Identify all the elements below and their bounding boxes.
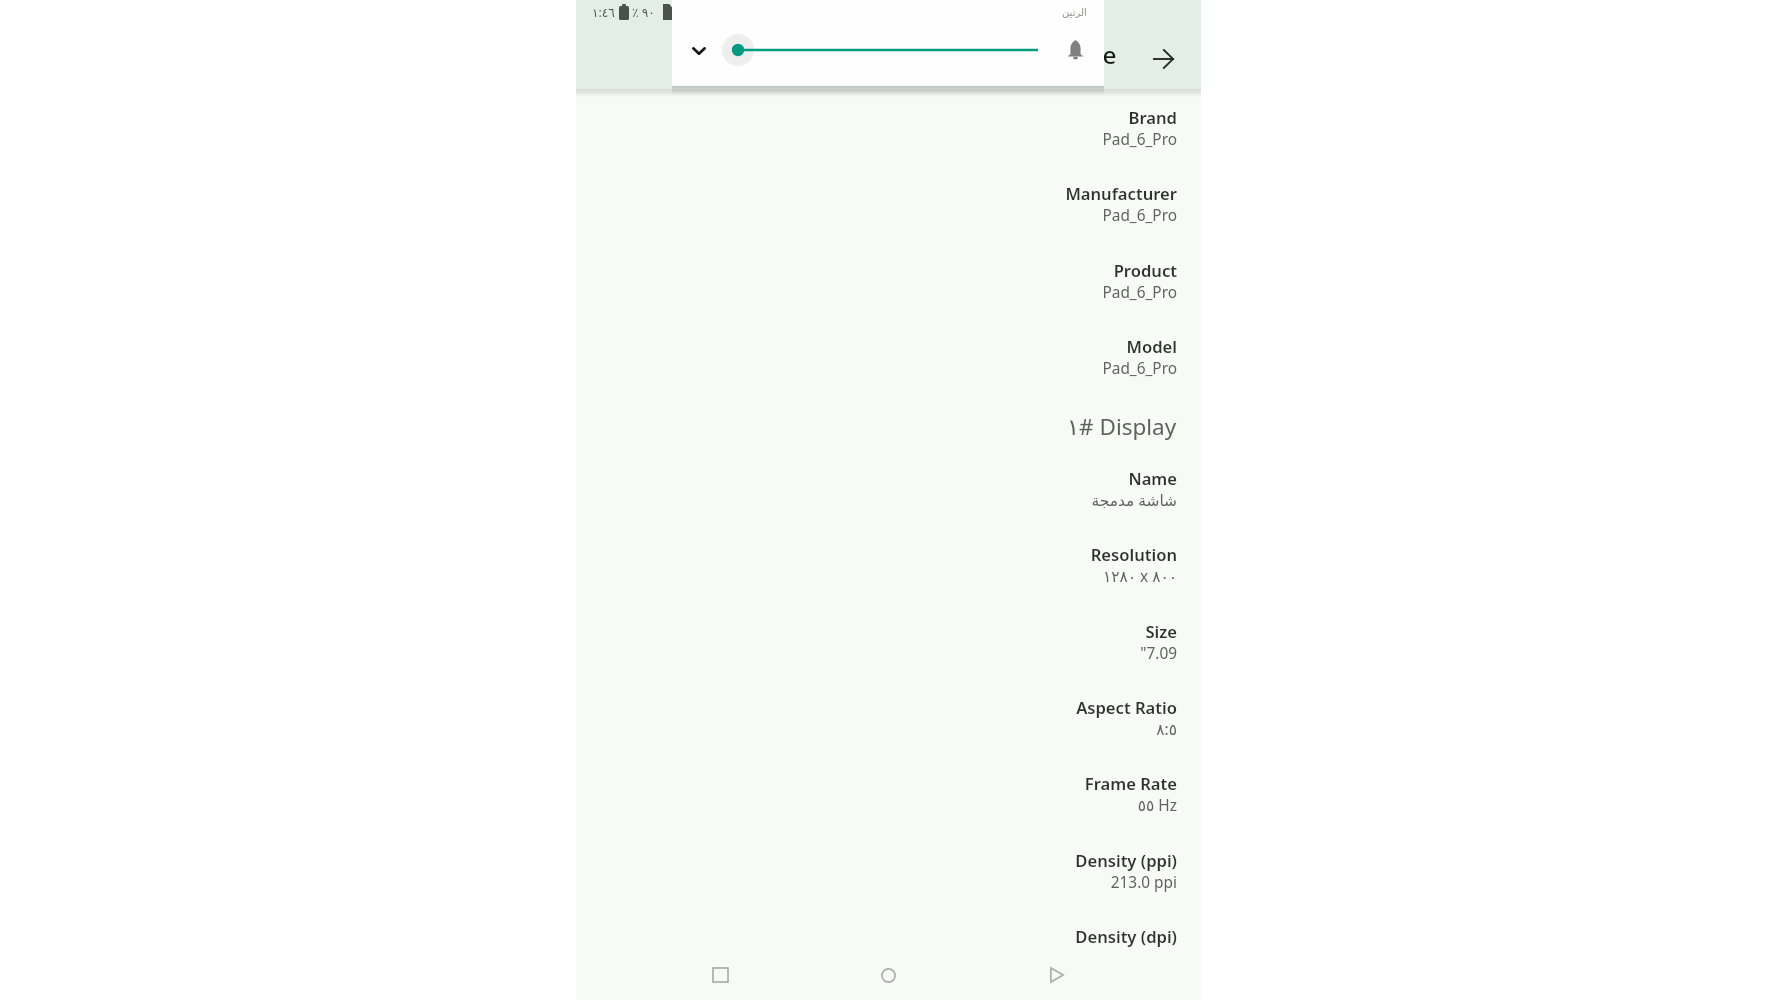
staticText: Pad_6_Pro bbox=[1102, 282, 1177, 303]
staticText: Pad_6_Pro bbox=[1102, 358, 1177, 379]
staticText: Size bbox=[1145, 620, 1177, 643]
staticText: ١# Display bbox=[1067, 411, 1177, 442]
button[interactable]: Size bbox=[576, 620, 1201, 692]
staticText: الرنين bbox=[1062, 7, 1087, 19]
staticText: Aspect Ratio bbox=[1076, 696, 1177, 719]
staticText: "7.09 bbox=[1140, 643, 1177, 664]
staticText: Resolution bbox=[1090, 543, 1177, 566]
button[interactable]: Model bbox=[576, 335, 1201, 407]
button[interactable]: Resolution bbox=[576, 543, 1201, 615]
button[interactable]: Density (ppi) bbox=[576, 849, 1201, 921]
staticText: Name bbox=[1128, 467, 1177, 490]
staticText: شاشة مدمجة bbox=[1091, 490, 1177, 511]
staticText: Model bbox=[1126, 335, 1177, 358]
staticText: Density (ppi) bbox=[1075, 849, 1177, 872]
button[interactable]: Density (dpi) bbox=[576, 925, 1201, 997]
staticText: Product bbox=[1113, 259, 1177, 282]
button[interactable]: Product bbox=[576, 259, 1201, 331]
staticText: Frame Rate bbox=[1084, 772, 1177, 795]
button[interactable]: Back bbox=[1033, 951, 1081, 999]
button[interactable]: Recents bbox=[696, 951, 744, 999]
button[interactable]: Ringtone bbox=[1061, 36, 1089, 64]
staticText: 213.0 ppi bbox=[1110, 872, 1177, 893]
staticText: ٥٥ Hz bbox=[1137, 795, 1177, 816]
button[interactable]: Back bbox=[1146, 42, 1180, 76]
staticText: ١:٤٦ bbox=[592, 4, 615, 21]
staticText: Brand bbox=[1128, 106, 1177, 129]
button[interactable]: Brand bbox=[576, 106, 1201, 178]
staticText: Density (dpi) bbox=[1075, 925, 1177, 948]
staticText: Pad_6_Pro bbox=[1102, 205, 1177, 226]
button[interactable]: Ring volume bbox=[722, 32, 1054, 68]
staticText: ١٢٨٠ x ٨٠٠ bbox=[1102, 566, 1177, 587]
button[interactable]: Home bbox=[864, 951, 912, 999]
button[interactable]: Name bbox=[576, 467, 1201, 539]
staticText: Pad_6_Pro bbox=[1102, 129, 1177, 150]
button[interactable]: Frame Rate bbox=[576, 772, 1201, 844]
staticText: Manufacturer bbox=[1065, 182, 1177, 205]
staticText: Device bbox=[1040, 38, 1117, 71]
button[interactable]: Manufacturer bbox=[576, 182, 1201, 254]
staticText: ٨:٥ bbox=[1156, 719, 1177, 740]
staticText: ٪ ٩٠ bbox=[632, 4, 655, 21]
button[interactable]: Collapse bbox=[686, 38, 712, 64]
button[interactable]: Aspect Ratio bbox=[576, 696, 1201, 768]
